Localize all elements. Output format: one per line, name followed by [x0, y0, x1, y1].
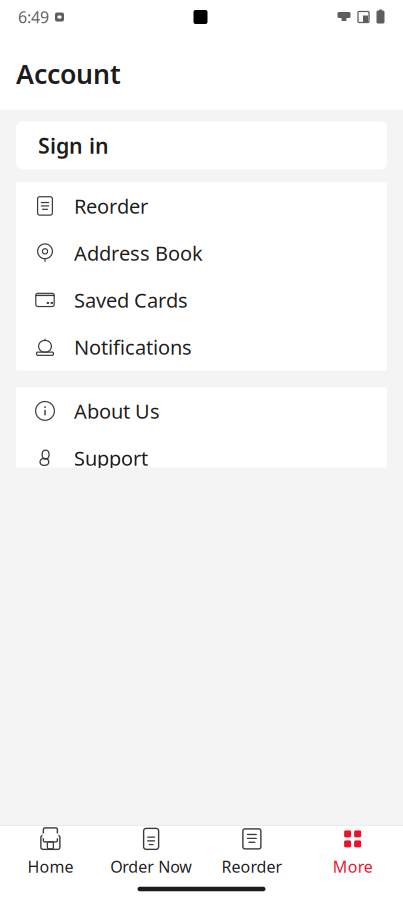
- staticText: Address Book: [74, 240, 203, 266]
- button[interactable]: Support: [16, 434, 387, 481]
- staticText: About Us: [74, 398, 160, 424]
- staticText: 6:49: [18, 6, 49, 28]
- button[interactable]: Reorder: [201, 826, 302, 878]
- staticText: Support: [74, 445, 148, 471]
- staticText: Reorder: [74, 193, 148, 219]
- staticText: Notifications: [74, 334, 192, 360]
- button[interactable]: Home: [0, 826, 101, 878]
- button[interactable]: Saved Cards: [16, 276, 387, 323]
- button[interactable]: Order Now: [101, 826, 202, 878]
- button[interactable]: Notifications: [16, 323, 387, 370]
- staticText: Saved Cards: [74, 287, 188, 313]
- staticText: Reorder: [221, 856, 282, 877]
- button[interactable]: Sign in: [16, 121, 387, 169]
- staticText: More: [333, 856, 373, 877]
- staticText: Order Now: [110, 856, 192, 877]
- staticText: Account: [16, 56, 121, 91]
- button[interactable]: About Us: [16, 387, 387, 434]
- button[interactable]: Reorder: [16, 182, 387, 229]
- staticText: Home: [27, 856, 73, 877]
- button[interactable]: More: [302, 826, 403, 878]
- staticText: Sign in: [38, 131, 109, 159]
- button[interactable]: Address Book: [16, 229, 387, 276]
